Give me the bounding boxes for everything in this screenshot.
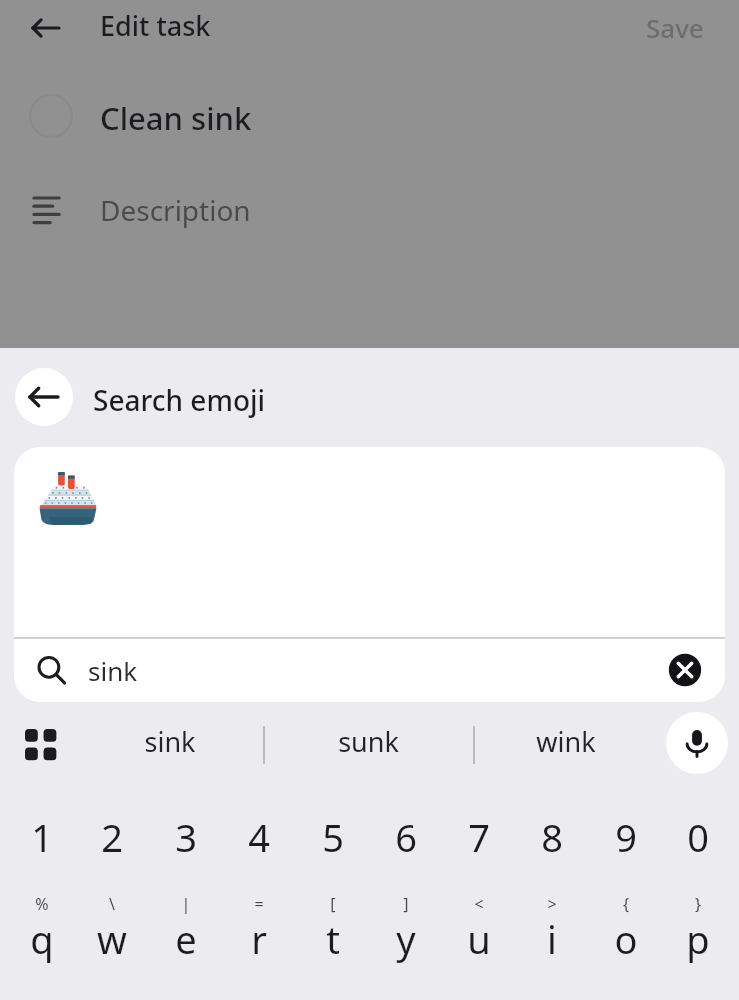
staticText: 8 [541, 811, 563, 863]
button[interactable]: Back [15, 368, 73, 426]
staticText: 1 [31, 811, 53, 863]
staticText: Search emoji [93, 381, 266, 419]
button[interactable]: [ [297, 885, 369, 991]
button[interactable]: > [516, 885, 588, 991]
button[interactable]: Keyboard modes [12, 716, 70, 774]
button[interactable]: sink [88, 710, 252, 772]
staticText: y [370, 913, 442, 965]
staticText: sink [88, 653, 138, 688]
staticText: \ [76, 893, 148, 915]
button[interactable]: 7 [443, 796, 515, 878]
button[interactable]: 5 [297, 796, 369, 878]
staticText: Save [646, 10, 704, 45]
staticText: 0 [687, 811, 709, 863]
button[interactable]: % [6, 885, 78, 991]
button[interactable]: 6 [370, 796, 442, 878]
button[interactable]: Save [620, 0, 730, 54]
staticText: 6 [395, 811, 417, 863]
staticText: 3 [175, 811, 197, 863]
staticText: o [590, 913, 662, 965]
staticText: w [76, 913, 148, 965]
button[interactable]: Voice input [666, 712, 728, 774]
button[interactable]: 2 [76, 796, 148, 878]
button[interactable]: = [223, 885, 295, 991]
staticText: 4 [248, 811, 270, 863]
staticText: sink [144, 723, 196, 760]
staticText: % [6, 893, 78, 915]
staticText: { [590, 893, 662, 915]
staticText: > [516, 893, 588, 915]
staticText: 9 [615, 811, 637, 863]
button[interactable]: Description [100, 191, 251, 229]
staticText: r [223, 913, 295, 965]
staticText: | [150, 893, 222, 915]
staticText: 2 [101, 811, 123, 863]
staticText: q [6, 913, 78, 965]
staticText: t [297, 913, 369, 965]
button[interactable]: 9 [590, 796, 662, 878]
button[interactable]: } [662, 885, 734, 991]
staticText: Edit task [100, 7, 211, 44]
button[interactable]: 1 [6, 796, 78, 878]
staticText: e [150, 913, 222, 965]
button[interactable]: { [590, 885, 662, 991]
button[interactable]: < [443, 885, 515, 991]
button[interactable]: Passenger ship emoji [31, 461, 105, 535]
button[interactable]: Clean sink [100, 97, 252, 139]
button[interactable]: wink [484, 710, 648, 772]
staticText: 7 [468, 811, 490, 863]
staticText: } [662, 893, 734, 915]
button[interactable]: 4 [223, 796, 295, 878]
button[interactable]: sunk [286, 710, 450, 772]
staticText: ] [370, 893, 442, 915]
button[interactable]: 3 [150, 796, 222, 878]
button[interactable]: 0 [662, 796, 734, 878]
button[interactable]: ] [370, 885, 442, 991]
button[interactable]: | [150, 885, 222, 991]
button[interactable]: \ [76, 885, 148, 991]
button[interactable]: Clear search [661, 646, 709, 694]
button[interactable]: sink [14, 639, 725, 701]
staticText: i [516, 913, 588, 965]
staticText: wink [536, 723, 596, 760]
staticText: [ [297, 893, 369, 915]
staticText: sunk [338, 723, 399, 760]
staticText: 5 [322, 811, 344, 863]
button[interactable]: 8 [516, 796, 588, 878]
staticText: u [443, 913, 515, 965]
staticText: = [223, 893, 295, 915]
staticText: < [443, 893, 515, 915]
button[interactable]: Back [22, 4, 70, 52]
staticText: p [662, 913, 734, 965]
